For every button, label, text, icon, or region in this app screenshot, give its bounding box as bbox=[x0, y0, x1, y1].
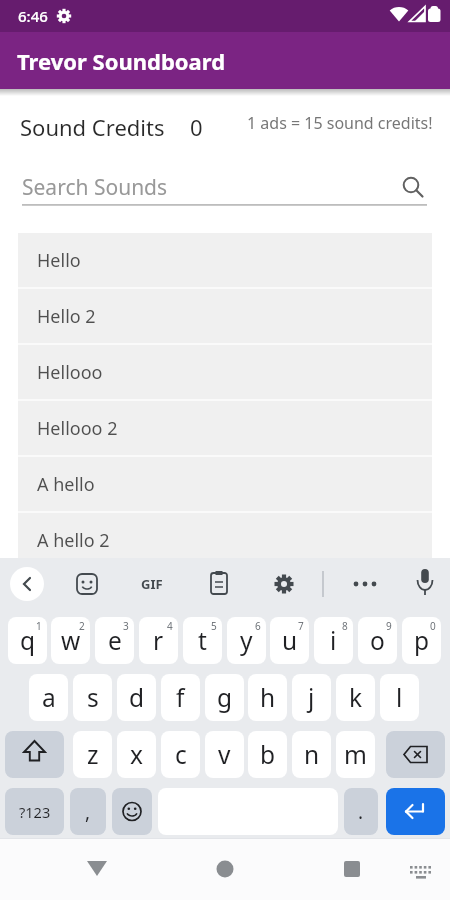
button[interactable] bbox=[5, 731, 64, 778]
button[interactable] bbox=[112, 788, 152, 835]
staticText: m bbox=[344, 738, 367, 771]
button[interactable]: f bbox=[161, 674, 200, 721]
staticText: Hello 2 bbox=[37, 304, 96, 329]
staticText: 1 ads = 15 sound credits! bbox=[247, 112, 433, 134]
staticText: j bbox=[308, 681, 315, 714]
staticText: r bbox=[153, 624, 164, 657]
staticText: p bbox=[414, 624, 430, 657]
staticText: 3 bbox=[123, 619, 129, 633]
staticText: 9 bbox=[386, 619, 392, 633]
button[interactable] bbox=[403, 855, 439, 885]
staticText: b bbox=[260, 738, 276, 771]
button[interactable]: w bbox=[51, 617, 90, 664]
staticText: 6:46 bbox=[18, 6, 48, 26]
button[interactable]: d bbox=[117, 674, 156, 721]
button[interactable]: l bbox=[380, 674, 419, 721]
button[interactable]: e bbox=[95, 617, 134, 664]
staticText: c bbox=[175, 738, 187, 771]
button[interactable]: Hello 2 bbox=[18, 289, 432, 343]
staticText: f bbox=[176, 681, 185, 714]
staticText: 6 bbox=[255, 619, 261, 633]
button[interactable] bbox=[10, 567, 44, 601]
button[interactable]: v bbox=[205, 731, 244, 778]
button[interactable]: Hello bbox=[18, 233, 432, 287]
button[interactable]: , bbox=[70, 788, 106, 835]
staticText: w bbox=[61, 624, 81, 657]
staticText: Trevor Soundboard bbox=[17, 46, 226, 76]
staticText: Sound Credits bbox=[20, 112, 165, 142]
staticText: Hellooo 2 bbox=[37, 416, 118, 441]
button[interactable]: s bbox=[73, 674, 112, 721]
staticText: z bbox=[87, 738, 99, 771]
staticText: 4 bbox=[167, 619, 173, 633]
staticText: 8 bbox=[342, 619, 348, 633]
button[interactable]: A hello 2 bbox=[18, 513, 432, 567]
button[interactable]: a bbox=[29, 674, 68, 721]
staticText: ?123 bbox=[19, 802, 51, 822]
staticText: 0 bbox=[430, 619, 436, 633]
staticText: l bbox=[396, 681, 403, 714]
staticText: 0 bbox=[190, 112, 203, 142]
button[interactable] bbox=[335, 850, 369, 884]
button[interactable]: z bbox=[73, 731, 112, 778]
staticText: h bbox=[260, 681, 276, 714]
staticText: q bbox=[20, 624, 36, 657]
staticText: u bbox=[282, 624, 298, 657]
button[interactable]: ?123 bbox=[5, 788, 64, 835]
button[interactable]: r bbox=[139, 617, 178, 664]
button[interactable]: Hellooo bbox=[18, 345, 432, 399]
staticText: Hello bbox=[37, 248, 81, 273]
staticText: i bbox=[330, 624, 337, 657]
button[interactable]: g bbox=[205, 674, 244, 721]
button[interactable]: u bbox=[270, 617, 309, 664]
staticText: , bbox=[85, 799, 91, 825]
staticText: e bbox=[108, 624, 122, 657]
button[interactable]: x bbox=[117, 731, 156, 778]
button[interactable]: b bbox=[248, 731, 287, 778]
staticText: g bbox=[217, 681, 233, 714]
staticText: A hello 2 bbox=[37, 528, 110, 553]
staticText: v bbox=[218, 738, 231, 771]
staticText: x bbox=[130, 738, 143, 771]
button[interactable]: m bbox=[336, 731, 375, 778]
button[interactable]: j bbox=[292, 674, 331, 721]
staticText: . bbox=[358, 799, 364, 825]
staticText: n bbox=[304, 738, 320, 771]
button[interactable]: y bbox=[227, 617, 266, 664]
button[interactable]: h bbox=[248, 674, 287, 721]
button[interactable] bbox=[208, 850, 242, 884]
staticText: 7 bbox=[298, 619, 304, 633]
staticText: y bbox=[240, 624, 253, 657]
button[interactable] bbox=[80, 850, 114, 884]
staticText: A hello bbox=[37, 472, 95, 497]
staticText: k bbox=[349, 681, 363, 714]
button[interactable]: t bbox=[183, 617, 222, 664]
staticText: 1 bbox=[36, 619, 42, 633]
button[interactable]: k bbox=[336, 674, 375, 721]
button[interactable] bbox=[386, 788, 445, 835]
button[interactable]: Trevor Soundboard bbox=[0, 32, 450, 89]
staticText: d bbox=[129, 681, 145, 714]
staticText: Search Sounds bbox=[22, 173, 168, 202]
button[interactable]: c bbox=[161, 731, 200, 778]
button[interactable]: p bbox=[402, 617, 441, 664]
staticText: t bbox=[198, 624, 207, 657]
button[interactable] bbox=[386, 731, 445, 778]
staticText: s bbox=[87, 681, 99, 714]
button[interactable]: q bbox=[8, 617, 47, 664]
staticText: a bbox=[42, 681, 56, 714]
button[interactable]: Search Sounds bbox=[18, 168, 432, 210]
button[interactable]: Hellooo 2 bbox=[18, 401, 432, 455]
staticText: 2 bbox=[79, 619, 85, 633]
button[interactable]: i bbox=[314, 617, 353, 664]
button[interactable]: o bbox=[358, 617, 397, 664]
staticText: 5 bbox=[211, 619, 217, 633]
staticText: GIF bbox=[141, 575, 163, 593]
button[interactable]: A hello bbox=[18, 457, 432, 511]
button[interactable]: . bbox=[344, 788, 378, 835]
button[interactable]: n bbox=[292, 731, 331, 778]
staticText: o bbox=[370, 624, 385, 657]
staticText: Hellooo bbox=[37, 360, 103, 385]
